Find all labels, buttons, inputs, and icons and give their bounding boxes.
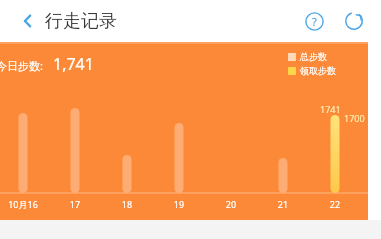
staticText: 今日步数: [0,58,43,73]
staticText: 领取步数 [300,65,336,76]
staticText: ? [312,14,317,29]
button[interactable]: Help [301,8,327,34]
staticText: 21 [261,198,305,210]
staticText: 22 [313,198,357,210]
staticText: 行走记录 [45,10,117,33]
staticText: 1700 [344,112,365,124]
staticText: 20 [209,198,253,210]
button[interactable]: Refresh [341,8,367,34]
staticText: 10月16 [1,198,45,210]
staticText: 1,741 [53,53,94,75]
staticText: 17 [53,198,97,210]
staticText: 总步数 [300,51,327,62]
staticText: 18 [105,198,149,210]
staticText: 19 [157,198,201,210]
button[interactable]: Back [14,7,42,35]
staticText: 1741 [320,103,341,115]
